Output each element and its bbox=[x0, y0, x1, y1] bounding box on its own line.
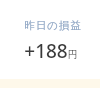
staticText: +188円 bbox=[24, 38, 78, 64]
button[interactable]: 昨日の損益 bbox=[0, 0, 100, 88]
staticText: 昨日の損益 bbox=[24, 19, 82, 32]
